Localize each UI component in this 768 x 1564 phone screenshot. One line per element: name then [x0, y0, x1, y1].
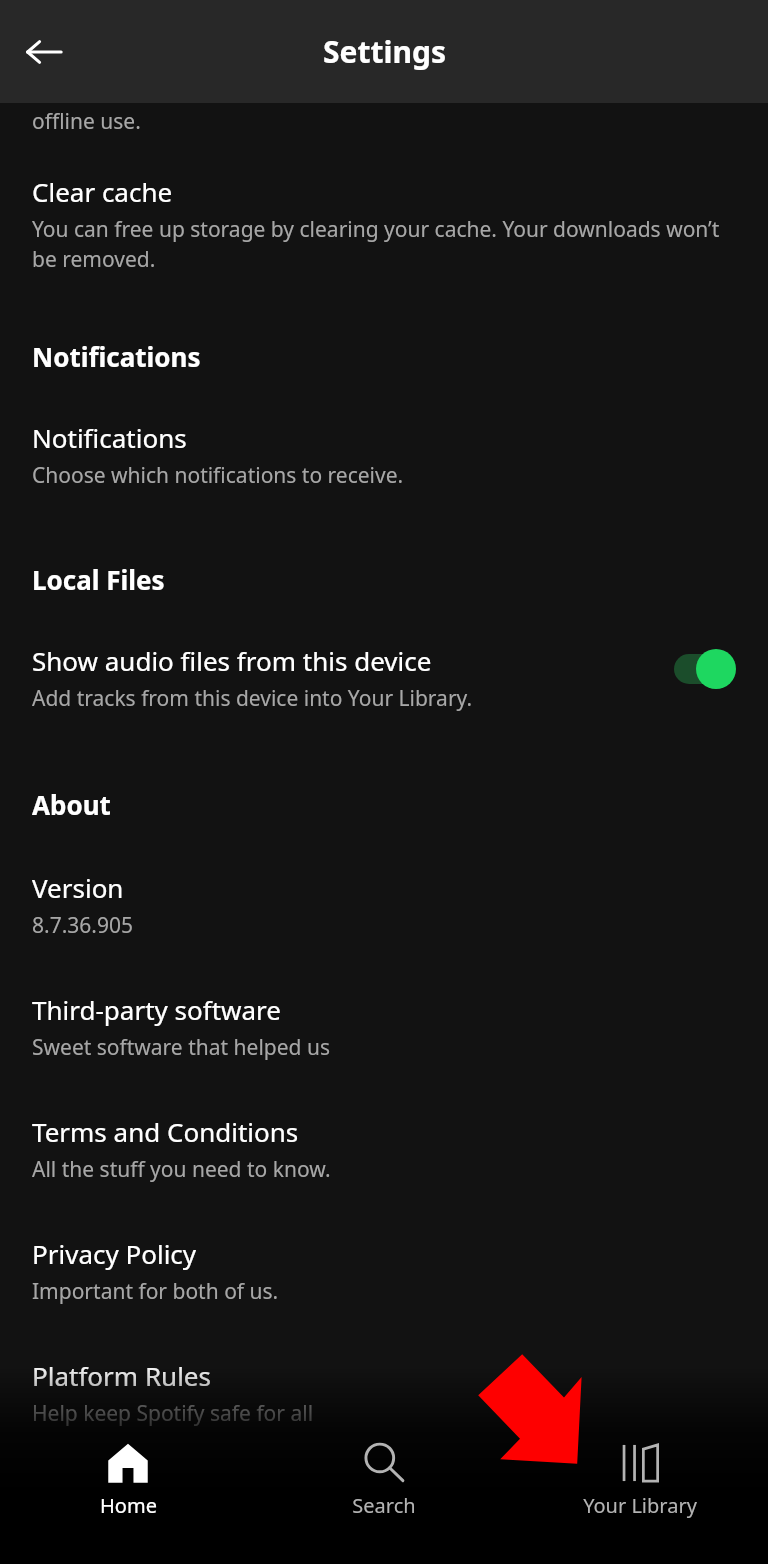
- button[interactable]: Clear cache: [0, 136, 768, 273]
- button[interactable]: Search: [256, 1432, 512, 1529]
- staticText: Local Files: [32, 562, 165, 597]
- staticText: Choose which notifications to receive.: [32, 461, 404, 490]
- button[interactable]: Show audio files from this device, on: [674, 649, 736, 689]
- staticText: offline use.: [32, 107, 141, 136]
- staticText: Search: [352, 1492, 416, 1519]
- button[interactable]: Platform Rules: [0, 1306, 768, 1428]
- staticText: Settings: [323, 31, 446, 72]
- staticText: Third-party software: [32, 992, 281, 1027]
- button[interactable]: Privacy Policy: [0, 1184, 768, 1306]
- button[interactable]: Home: [0, 1432, 256, 1529]
- staticText: Home: [100, 1492, 157, 1519]
- staticText: Terms and Conditions: [32, 1114, 299, 1149]
- staticText: Sweet software that helped us: [32, 1033, 330, 1062]
- button[interactable]: Version: [0, 822, 768, 940]
- staticText: All the stuff you need to know.: [32, 1155, 331, 1184]
- staticText: Help keep Spotify safe for all: [32, 1399, 314, 1428]
- button[interactable]: Your Library: [512, 1432, 768, 1529]
- staticText: Notifications: [32, 339, 201, 374]
- staticText: Privacy Policy: [32, 1236, 197, 1271]
- staticText: You can free up storage by clearing your…: [32, 215, 736, 273]
- button[interactable]: Terms and Conditions: [0, 1062, 768, 1184]
- staticText: Platform Rules: [32, 1358, 211, 1393]
- staticText: Version: [32, 870, 124, 905]
- staticText: Add tracks from this device into Your Li…: [32, 684, 473, 713]
- button[interactable]: Third-party software: [0, 940, 768, 1062]
- staticText: Important for both of us.: [32, 1277, 279, 1306]
- staticText: About: [32, 787, 111, 822]
- button[interactable]: Back: [20, 28, 68, 76]
- staticText: Notifications: [32, 420, 187, 455]
- staticText: Show audio files from this device: [32, 643, 432, 678]
- button[interactable]: Notifications: [0, 374, 768, 490]
- staticText: Clear cache: [32, 174, 173, 209]
- staticText: 8.7.36.905: [32, 911, 133, 940]
- staticText: Your Library: [583, 1492, 697, 1519]
- button[interactable]: Show audio files from this device: [0, 597, 768, 713]
